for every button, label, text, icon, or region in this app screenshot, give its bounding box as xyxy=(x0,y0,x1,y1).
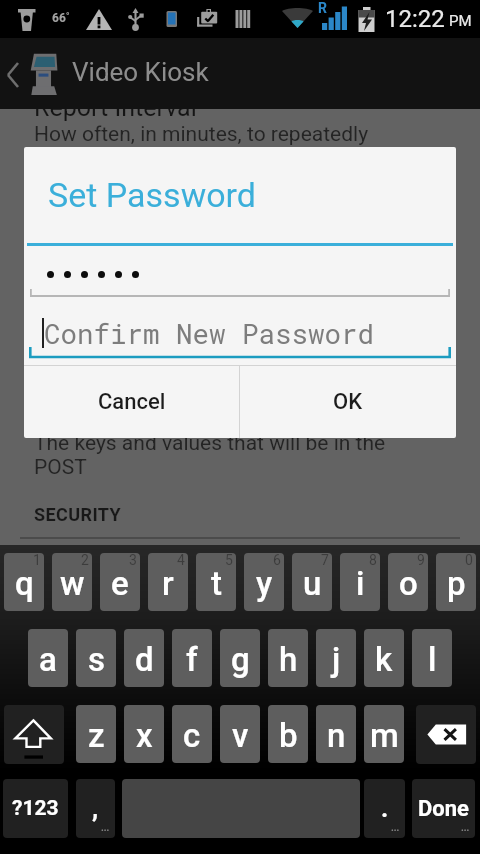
staticText: R xyxy=(318,0,327,16)
button[interactable]: k xyxy=(364,629,404,687)
staticText: POST xyxy=(34,455,87,480)
button[interactable]: Delete xyxy=(416,705,476,764)
staticText: 9 xyxy=(417,553,425,568)
button[interactable]: Cancel xyxy=(24,366,239,438)
button[interactable]: j xyxy=(316,629,356,687)
button[interactable]: w xyxy=(52,553,92,611)
staticText: e xyxy=(111,564,129,603)
staticText: SECURITY xyxy=(34,504,122,525)
staticText: y xyxy=(256,564,273,603)
button[interactable]: h xyxy=(268,629,308,687)
staticText: w xyxy=(60,564,85,603)
staticText: q xyxy=(15,564,34,603)
button[interactable]: Shift xyxy=(4,705,64,764)
button[interactable]: u xyxy=(292,553,332,611)
staticText: l xyxy=(428,640,437,679)
button[interactable]: , xyxy=(76,779,115,838)
staticText: Cancel xyxy=(98,389,166,415)
staticText: x xyxy=(136,716,153,755)
button[interactable]: n xyxy=(316,705,356,763)
staticText: 3 xyxy=(129,553,137,568)
button[interactable]: s xyxy=(76,629,116,687)
staticText: 0 xyxy=(465,553,473,568)
staticText: . xyxy=(381,794,389,823)
staticText: 2 xyxy=(81,553,89,568)
staticText: Set Password xyxy=(48,175,256,215)
button[interactable]: z xyxy=(76,705,116,763)
staticText: p xyxy=(447,564,466,603)
staticText: v xyxy=(232,716,249,755)
staticText: m xyxy=(370,716,399,755)
staticText: 6 xyxy=(273,553,281,568)
staticText: z xyxy=(88,716,105,755)
staticText: ••• xyxy=(391,826,400,835)
button[interactable]: t xyxy=(196,553,236,611)
staticText: j xyxy=(332,640,341,679)
staticText: b xyxy=(279,716,298,755)
staticText: d xyxy=(135,640,154,679)
staticText: Confirm New Password xyxy=(44,315,375,351)
staticText: h xyxy=(279,640,298,679)
staticText: ?123 xyxy=(12,796,59,821)
staticText: f xyxy=(186,640,198,679)
button[interactable]: d xyxy=(124,629,164,687)
button[interactable]: b xyxy=(268,705,308,763)
staticText: o xyxy=(399,564,418,603)
button[interactable]: f xyxy=(172,629,212,687)
button[interactable]: i xyxy=(340,553,380,611)
button[interactable]: r xyxy=(148,553,188,611)
staticText: n xyxy=(327,716,346,755)
button[interactable]: o xyxy=(388,553,428,611)
staticText: Report Interval xyxy=(34,109,197,122)
staticText: g xyxy=(231,640,250,679)
button[interactable]: a xyxy=(28,629,68,687)
button[interactable]: Done xyxy=(412,779,475,838)
staticText: How often, in minutes, to repeatedly xyxy=(34,122,369,147)
button[interactable]: OK xyxy=(240,366,456,438)
staticText: ••• xyxy=(461,826,470,835)
staticText: 66˚ xyxy=(52,11,70,25)
button[interactable]: c xyxy=(172,705,212,763)
staticText: OK xyxy=(333,389,363,415)
staticText: 8 xyxy=(369,553,377,568)
staticText: ••• xyxy=(101,826,110,835)
button[interactable]: m xyxy=(364,705,404,763)
button[interactable]: g xyxy=(220,629,260,687)
staticText: 4 xyxy=(177,553,185,568)
button[interactable]: l xyxy=(412,629,452,687)
staticText: u xyxy=(303,564,322,603)
button[interactable]: v xyxy=(220,705,260,763)
staticText: 5 xyxy=(225,553,233,568)
button[interactable]: . xyxy=(364,779,405,838)
button[interactable]: Back xyxy=(0,38,480,109)
staticText: 7 xyxy=(321,553,329,568)
staticText: Video Kiosk xyxy=(72,57,209,87)
staticText: 1 xyxy=(33,553,41,568)
button[interactable]: ?123 xyxy=(3,779,68,838)
button[interactable]: x xyxy=(124,705,164,763)
staticText: 12:22 xyxy=(385,5,445,33)
staticText: s xyxy=(88,640,105,679)
staticText: c xyxy=(183,716,201,755)
staticText: , xyxy=(92,794,99,823)
button[interactable]: q xyxy=(4,553,44,611)
staticText: k xyxy=(375,640,393,679)
staticText: The keys and values that will be in the xyxy=(34,431,386,456)
staticText: r xyxy=(162,564,174,603)
staticText: i xyxy=(356,564,365,603)
button[interactable]: p xyxy=(436,553,476,611)
staticText: t xyxy=(211,564,222,603)
button[interactable]: e xyxy=(100,553,140,611)
other: Back xyxy=(2,59,24,91)
button[interactable]: y xyxy=(244,553,284,611)
staticText: Done xyxy=(418,796,469,822)
staticText: PM xyxy=(449,12,472,30)
staticText: a xyxy=(39,640,57,679)
